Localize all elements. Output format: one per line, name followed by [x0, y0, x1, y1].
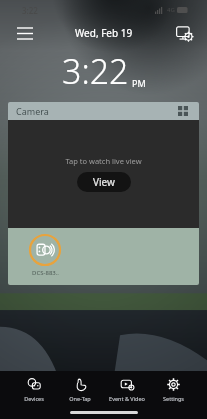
button[interactable]: Grid view	[175, 103, 191, 119]
button[interactable]: View	[77, 172, 131, 192]
staticText: 4G	[167, 6, 175, 14]
staticText: PM	[132, 77, 146, 89]
staticText: Devices	[24, 395, 44, 402]
button[interactable]: Device settings	[171, 20, 197, 46]
button[interactable]: Menu	[12, 20, 38, 46]
button[interactable]: Tap to watch live view	[8, 120, 199, 228]
staticText: Camera	[16, 105, 49, 117]
staticText: DCS-883..	[32, 269, 59, 277]
staticText: 3:22	[62, 48, 129, 94]
staticText: Event & Video	[109, 395, 145, 402]
staticText: View	[93, 175, 115, 189]
staticText: One-Tap	[69, 395, 91, 402]
staticText: Wed, Feb 19	[75, 26, 133, 40]
button[interactable]: Devices	[11, 375, 57, 404]
staticText: Tap to watch live view	[65, 156, 142, 166]
staticText: 3:22	[22, 5, 38, 16]
button[interactable]: Camera	[8, 102, 199, 120]
button[interactable]: Settings	[150, 375, 196, 404]
staticText: Settings	[163, 395, 184, 402]
button[interactable]: Event & Video	[104, 375, 150, 404]
button[interactable]: DCS-883..	[20, 234, 70, 277]
button[interactable]: One-Tap	[57, 375, 103, 404]
